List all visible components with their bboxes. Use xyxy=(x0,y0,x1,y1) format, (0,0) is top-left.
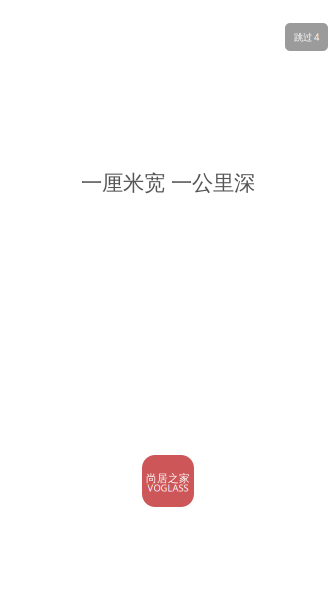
staticText: VOGLASS xyxy=(147,482,188,494)
staticText: 一厘米宽 一公里深 xyxy=(81,170,255,196)
button[interactable]: 跳过 4 xyxy=(285,23,328,51)
staticText: 尚居之家 xyxy=(146,472,190,485)
staticText: 跳过 4 xyxy=(294,31,319,43)
